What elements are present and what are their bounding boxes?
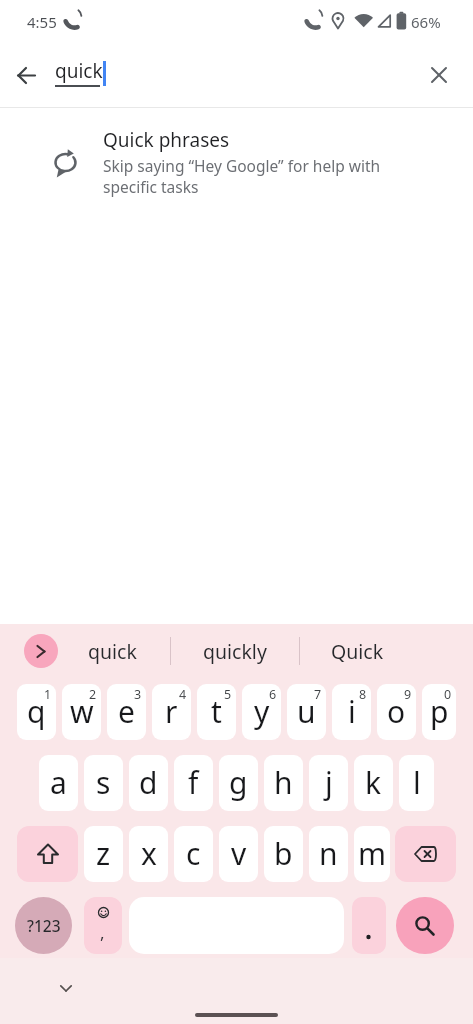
staticText: ?123 <box>27 915 61 936</box>
staticText: f <box>188 762 199 803</box>
staticText: d <box>139 762 158 803</box>
button[interactable]: n <box>309 826 348 882</box>
button[interactable]: h <box>264 755 303 811</box>
staticText: 2 <box>89 686 97 703</box>
button[interactable] <box>8 57 44 93</box>
staticText: quick <box>55 58 103 84</box>
button[interactable] <box>395 826 456 882</box>
button[interactable]: s <box>84 755 123 811</box>
staticText: Skip saying “Hey Google” for help with <box>103 155 381 176</box>
button[interactable]: u <box>287 684 326 740</box>
button[interactable]: quick <box>67 628 157 674</box>
staticText: 3 <box>134 686 142 703</box>
staticText: quick <box>88 638 137 665</box>
staticText: b <box>274 833 293 874</box>
staticText: e <box>118 691 135 732</box>
staticText: q <box>27 691 46 732</box>
button[interactable]: k <box>354 755 393 811</box>
button[interactable] <box>352 897 386 954</box>
button[interactable]: r <box>152 684 191 740</box>
button[interactable]: p <box>422 684 456 740</box>
staticText: k <box>365 762 382 803</box>
button[interactable]: ?123 <box>15 897 72 954</box>
button[interactable]: q <box>17 684 56 740</box>
button[interactable]: d <box>129 755 168 811</box>
button[interactable] <box>48 974 84 1002</box>
staticText: y <box>254 691 270 732</box>
staticText: 66% <box>411 12 441 32</box>
button[interactable]: f <box>174 755 213 811</box>
button[interactable]: quickly <box>190 628 280 674</box>
button[interactable] <box>24 634 58 668</box>
button[interactable]: l <box>399 755 434 811</box>
button[interactable] <box>396 897 454 954</box>
button[interactable]: , <box>84 897 122 954</box>
staticText: t <box>211 691 222 732</box>
staticText: Quick phrases <box>103 127 230 153</box>
staticText: o <box>387 691 406 732</box>
staticText: a <box>50 762 67 803</box>
staticText: 4 <box>179 686 187 703</box>
staticText: z <box>96 833 111 874</box>
button[interactable]: c <box>174 826 213 882</box>
staticText: l <box>413 762 421 803</box>
staticText: i <box>348 691 356 732</box>
button[interactable]: b <box>264 826 303 882</box>
button[interactable]: t <box>197 684 236 740</box>
button[interactable]: m <box>354 826 390 882</box>
button[interactable]: y <box>242 684 281 740</box>
staticText: m <box>358 833 387 874</box>
staticText: g <box>229 762 248 803</box>
button[interactable]: w <box>62 684 101 740</box>
staticText: n <box>319 833 338 874</box>
staticText: Quick <box>331 638 384 665</box>
staticText: v <box>231 833 247 874</box>
button[interactable]: v <box>219 826 258 882</box>
button[interactable]: j <box>309 755 348 811</box>
staticText: s <box>96 762 111 803</box>
staticText: , <box>100 921 105 944</box>
button[interactable]: a <box>39 755 78 811</box>
staticText: 9 <box>404 686 412 703</box>
staticText: w <box>70 691 94 732</box>
button[interactable]: i <box>332 684 371 740</box>
button[interactable]: z <box>84 826 123 882</box>
staticText: 6 <box>269 686 277 703</box>
staticText: 8 <box>359 686 367 703</box>
staticText: p <box>430 691 449 732</box>
button[interactable]: e <box>107 684 146 740</box>
button[interactable] <box>421 57 457 93</box>
staticText: c <box>186 833 201 874</box>
button[interactable]: x <box>129 826 168 882</box>
button[interactable] <box>17 826 78 882</box>
staticText: x <box>141 833 157 874</box>
staticText: 1 <box>44 686 52 703</box>
staticText: 7 <box>314 686 322 703</box>
staticText: j <box>325 762 333 803</box>
staticText: quickly <box>203 638 267 665</box>
staticText: 4:55 <box>27 12 57 32</box>
button[interactable]: Quick phrases <box>0 116 473 212</box>
staticText: specific tasks <box>103 176 199 197</box>
button[interactable]: Quick <box>312 628 402 674</box>
button[interactable]: g <box>219 755 258 811</box>
staticText: 0 <box>444 686 452 703</box>
button[interactable]: o <box>377 684 416 740</box>
staticText: 5 <box>224 686 232 703</box>
staticText: r <box>165 691 178 732</box>
staticText: u <box>297 691 316 732</box>
staticText: h <box>274 762 293 803</box>
